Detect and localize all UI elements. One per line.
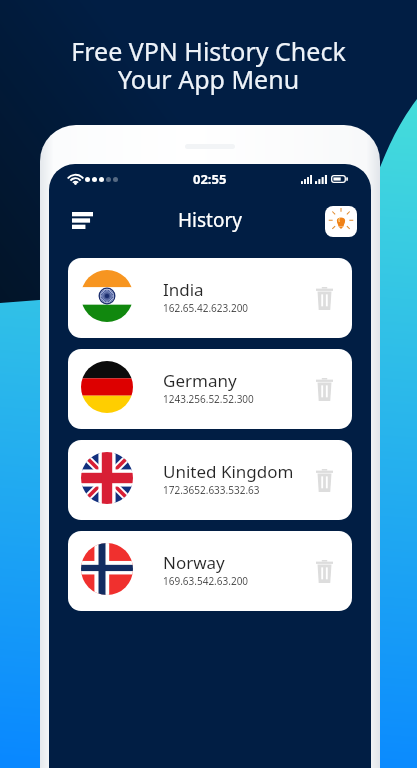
button[interactable]: Menu xyxy=(67,205,98,236)
button[interactable]: Delete xyxy=(307,372,341,406)
staticText: Free VPN History Check Your App Menu xyxy=(71,34,346,96)
staticText: 1243.256.52.52.300 xyxy=(163,392,254,406)
staticText: Norway xyxy=(163,551,225,574)
staticText: 169.63.542.63.200 xyxy=(163,574,249,588)
staticText: United Kingdom xyxy=(163,460,294,483)
button[interactable]: United Kingdom xyxy=(68,440,352,520)
button[interactable]: Norway xyxy=(68,531,352,611)
button[interactable]: Delete xyxy=(307,554,341,588)
staticText: 162.65.42.623.200 xyxy=(163,301,249,315)
button[interactable]: Delete xyxy=(307,463,341,497)
staticText: Germany xyxy=(163,369,237,392)
button[interactable]: Tips xyxy=(325,206,357,237)
staticText: History xyxy=(178,207,242,233)
button[interactable]: Germany xyxy=(68,349,352,429)
button[interactable]: India xyxy=(68,258,352,338)
staticText: 02:55 xyxy=(193,170,227,188)
staticText: India xyxy=(163,278,204,301)
button[interactable]: Delete xyxy=(307,281,341,315)
staticText: 172.3652.633.532.63 xyxy=(163,483,260,497)
